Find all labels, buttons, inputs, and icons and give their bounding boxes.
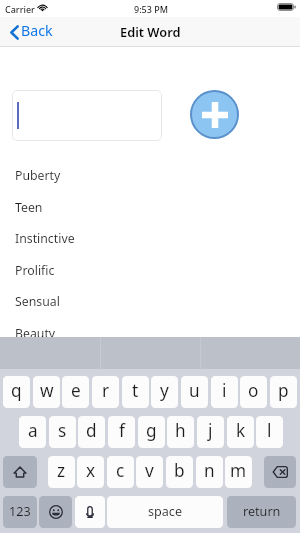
button[interactable]: space <box>107 496 223 528</box>
button[interactable]: u <box>181 376 208 408</box>
button[interactable]: j <box>197 416 224 448</box>
button[interactable]: f <box>108 416 135 448</box>
staticText: p <box>278 379 289 402</box>
staticText: g <box>146 419 157 442</box>
button[interactable]: Instinctive <box>0 222 300 254</box>
button[interactable]: p <box>270 376 297 408</box>
button[interactable]: z <box>48 456 75 488</box>
button[interactable]: Sensual <box>0 285 300 317</box>
button[interactable]: Charm <box>0 349 300 381</box>
button[interactable]: l <box>256 416 283 448</box>
staticText: d <box>86 419 97 442</box>
button[interactable]: h <box>167 416 194 448</box>
staticText: l <box>267 419 272 442</box>
staticText: n <box>204 459 215 482</box>
staticText: w <box>40 379 54 402</box>
staticText: h <box>175 419 186 442</box>
staticText: x <box>86 459 96 482</box>
staticText: Sensual <box>15 293 60 310</box>
button[interactable]: Beauty <box>0 317 300 349</box>
staticText: Back <box>21 21 53 40</box>
button[interactable]: a <box>19 416 46 448</box>
staticText: Carrier <box>5 3 35 15</box>
button[interactable]: Teen <box>0 191 300 223</box>
staticText: 9:53 PM <box>134 3 168 15</box>
staticText: s <box>58 419 67 442</box>
button[interactable]: b <box>166 456 193 488</box>
staticText: t <box>132 379 139 402</box>
button[interactable]: n <box>196 456 223 488</box>
staticText: f <box>119 419 125 442</box>
staticText: Teen <box>15 199 43 216</box>
button[interactable]: return <box>227 496 296 528</box>
button[interactable]: i <box>211 376 238 408</box>
staticText: o <box>248 379 259 402</box>
button[interactable]: v <box>136 456 163 488</box>
button[interactable]: Delete <box>264 456 296 488</box>
staticText: b <box>174 459 185 482</box>
staticText: Prolific <box>15 262 55 279</box>
button[interactable]: k <box>227 416 254 448</box>
staticText: e <box>71 379 81 402</box>
button[interactable]: Emoji <box>39 496 72 528</box>
staticText: i <box>222 379 227 402</box>
staticText: Puberty <box>15 167 61 184</box>
button[interactable]: Add word <box>190 90 239 139</box>
staticText: c <box>116 459 125 482</box>
button[interactable]: w <box>33 376 60 408</box>
staticText: Edit Word <box>120 23 181 40</box>
button[interactable]: o <box>240 376 267 408</box>
staticText: z <box>57 459 66 482</box>
staticText: 123 <box>9 503 31 520</box>
button[interactable]: y <box>151 376 178 408</box>
staticText: q <box>11 379 22 402</box>
button[interactable]: g <box>138 416 165 448</box>
button[interactable]: s <box>49 416 76 448</box>
button[interactable]: d <box>78 416 105 448</box>
staticText: y <box>160 379 169 402</box>
staticText: return <box>243 503 281 520</box>
staticText: r <box>102 379 110 402</box>
button[interactable]: r <box>92 376 119 408</box>
button[interactable]: q <box>3 376 30 408</box>
button[interactable]: Back <box>0 17 58 47</box>
staticText: space <box>148 503 182 520</box>
staticText: m <box>230 459 247 482</box>
button[interactable]: 123 <box>3 496 37 528</box>
button[interactable]: m <box>225 456 252 488</box>
button[interactable]: Prolific <box>0 254 300 286</box>
button[interactable]: Dictate <box>75 496 105 528</box>
staticText: Beauty <box>15 325 56 342</box>
staticText: Charm <box>15 357 54 374</box>
button[interactable]: x <box>77 456 104 488</box>
button[interactable]: c <box>107 456 134 488</box>
button[interactable]: t <box>122 376 149 408</box>
staticText: Instinctive <box>15 230 75 247</box>
staticText: j <box>208 419 213 442</box>
button[interactable]: Shift <box>3 456 37 488</box>
button[interactable]: e <box>62 376 89 408</box>
button[interactable] <box>12 90 162 141</box>
button[interactable]: Puberty <box>0 159 300 191</box>
staticText: v <box>145 459 154 482</box>
staticText: a <box>28 419 38 442</box>
staticText: u <box>189 379 200 402</box>
staticText: k <box>236 419 246 442</box>
